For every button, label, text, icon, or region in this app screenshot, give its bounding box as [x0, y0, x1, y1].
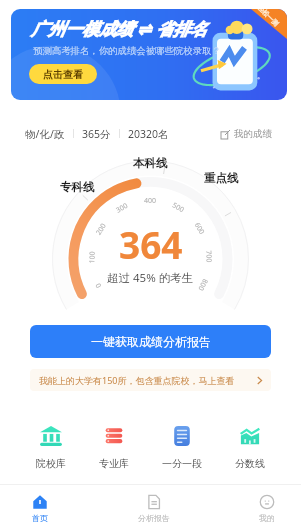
- button[interactable]: 点击查看: [29, 64, 97, 84]
- staticText: 我的: [259, 513, 275, 523]
- button[interactable]: 我能上的大学有150所，包含重点院校，马上查看: [30, 369, 271, 391]
- staticText: 20320名: [128, 127, 169, 140]
- staticText: 首页: [32, 513, 48, 523]
- staticText: 院校库: [36, 457, 66, 470]
- staticText: 100: [87, 250, 98, 264]
- staticText: 点击查看: [43, 68, 83, 81]
- staticText: 200: [94, 221, 109, 237]
- staticText: 预测高考排名，你的成绩会被哪些院校录取？: [33, 45, 221, 57]
- staticText: 我能上的大学有150所，包含重点院校，马上查看: [39, 374, 235, 386]
- button[interactable]: 专业库: [93, 421, 135, 472]
- button[interactable]: 分数线: [229, 421, 271, 472]
- staticText: 分析报告: [138, 513, 170, 523]
- staticText: 超过 45% 的考生: [107, 270, 194, 286]
- staticText: 物/化/政: [25, 127, 65, 140]
- staticText: 600: [192, 221, 207, 237]
- staticText: 700: [203, 250, 214, 264]
- staticText: 300: [114, 200, 131, 216]
- staticText: 一键获取成绩分析报告: [91, 334, 211, 349]
- button[interactable]: 一键获取成绩分析报告: [30, 325, 271, 358]
- staticText: 364: [119, 219, 183, 269]
- button[interactable]: 一分一段: [156, 421, 208, 472]
- staticText: 365分: [82, 127, 111, 140]
- button[interactable]: 我的成绩: [221, 128, 272, 140]
- button[interactable]: 首页: [20, 485, 60, 531]
- staticText: 我的成绩: [234, 128, 272, 140]
- staticText: 一分一段: [162, 457, 202, 470]
- staticText: 重点线: [204, 171, 239, 185]
- staticText: 本科线: [133, 156, 168, 170]
- button[interactable]: 轻松一测: [11, 9, 287, 100]
- staticText: 500: [170, 200, 187, 216]
- staticText: 分数线: [235, 457, 265, 470]
- staticText: 专科线: [60, 180, 95, 194]
- staticText: 0: [93, 280, 104, 289]
- staticText: 广州一模成绩 ⇌ 省排名: [31, 17, 208, 40]
- staticText: 400: [144, 196, 157, 206]
- staticText: 专业库: [99, 457, 129, 470]
- button[interactable]: 分析报告: [134, 485, 174, 531]
- button[interactable]: 我的: [247, 485, 287, 531]
- button[interactable]: 院校库: [30, 421, 72, 472]
- staticText: 轻松一测: [256, 9, 280, 28]
- staticText: 800: [195, 277, 210, 293]
